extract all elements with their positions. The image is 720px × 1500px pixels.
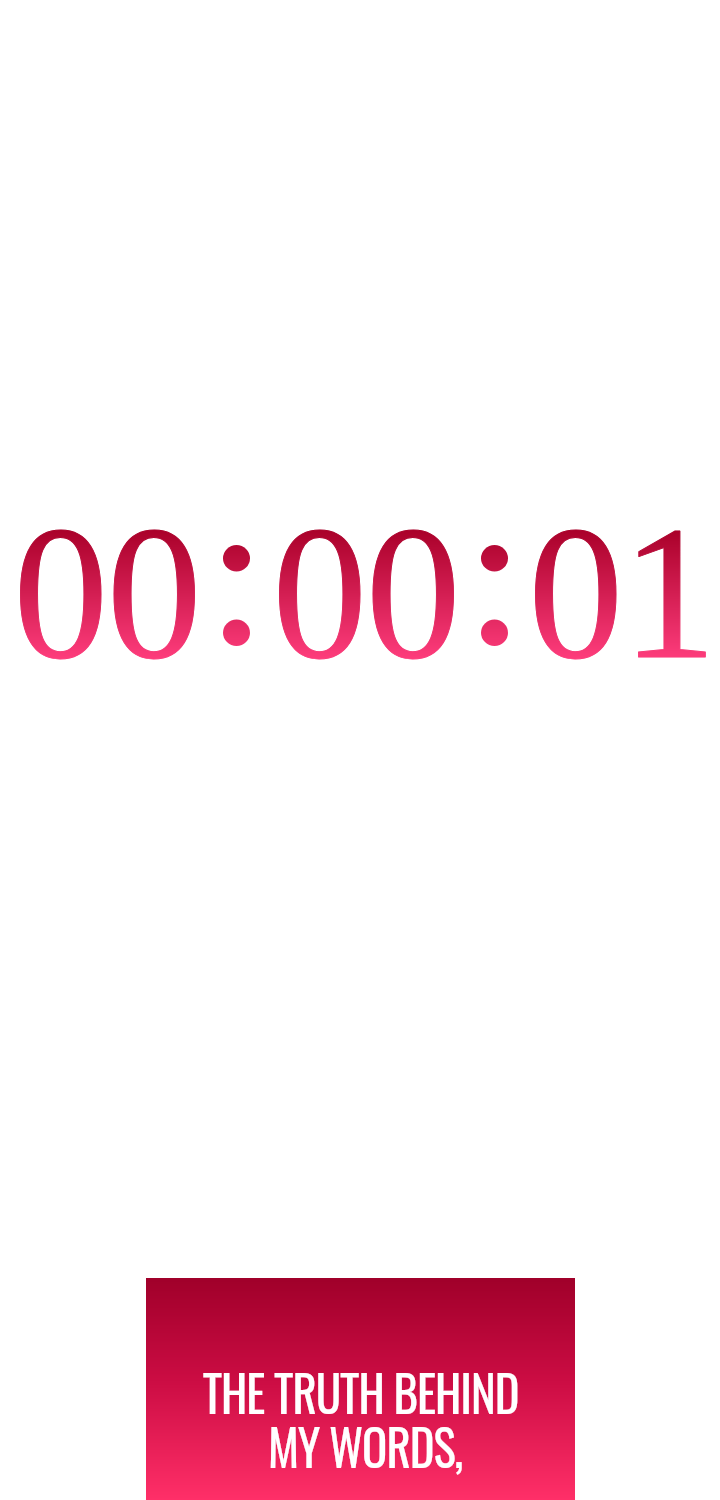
staticText: 00 <box>273 488 460 698</box>
staticText: 00 <box>14 488 201 698</box>
staticText: 00 <box>14 488 201 698</box>
staticText: 01 <box>529 488 716 698</box>
staticText: 01 <box>529 488 716 698</box>
button[interactable]: THE TRUTH BEHIND <box>146 1278 575 1500</box>
staticText: 00 <box>273 488 460 698</box>
staticText: THE TRUTH BEHIND <box>162 1353 559 1428</box>
button[interactable]: Countdown timer, 00:00:01 <box>14 488 706 678</box>
staticText: MY WORDS, <box>167 1407 563 1482</box>
